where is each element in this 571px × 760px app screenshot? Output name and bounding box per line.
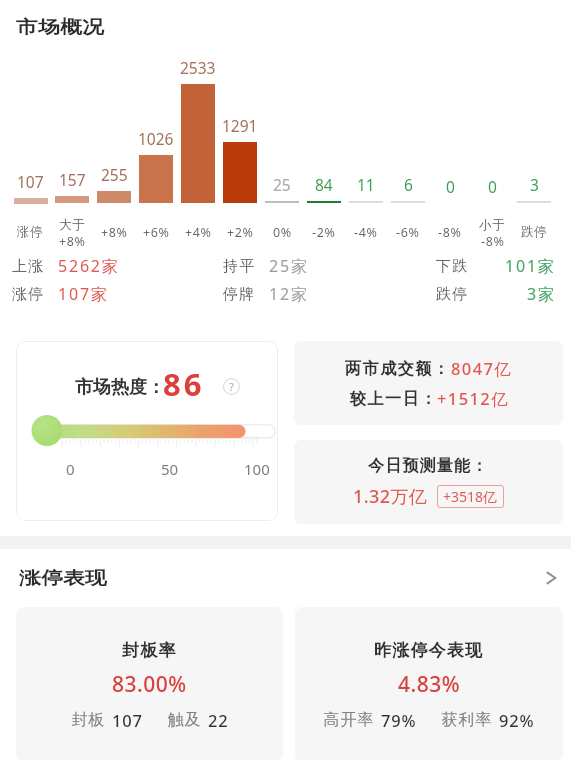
staticText: -8% <box>481 233 505 247</box>
staticText: 101家 <box>505 255 556 277</box>
staticText: 83.00% <box>112 670 187 699</box>
staticText: 25家 <box>269 255 309 277</box>
staticText: 0% <box>273 224 292 241</box>
staticText: 跌停 <box>521 224 548 240</box>
staticText: 107 <box>17 171 44 191</box>
staticText: 1.32万亿 <box>353 484 428 509</box>
staticText: 255 <box>101 164 128 184</box>
staticText: 跌停 <box>436 285 469 304</box>
staticText: 22 <box>208 709 229 731</box>
staticText: +1512亿 <box>437 387 510 410</box>
staticText: 持平 <box>223 257 256 276</box>
staticText: 封板 <box>71 710 105 730</box>
staticText: 封板率 <box>122 640 177 661</box>
staticText: 5262家 <box>58 255 120 277</box>
staticText: 涨停 <box>17 224 44 240</box>
staticText: +2% <box>227 224 254 241</box>
staticText: 157 <box>59 169 86 189</box>
button[interactable]: 封板率 <box>16 607 283 760</box>
staticText: 3 <box>530 174 539 194</box>
staticText: 92% <box>499 709 535 731</box>
staticText: 79% <box>381 709 417 731</box>
button[interactable]: 涨停表现 <box>0 561 571 597</box>
staticText: 涨停 <box>12 285 45 304</box>
staticText: +6% <box>143 224 170 241</box>
staticText: -2% <box>312 224 336 241</box>
staticText: +8% <box>101 224 128 241</box>
staticText: 86 <box>163 363 205 405</box>
staticText: 停牌 <box>223 285 256 304</box>
staticText: 0 <box>488 176 497 196</box>
staticText: 上涨 <box>12 257 45 276</box>
staticText: 0 <box>446 176 455 196</box>
staticText: -8% <box>438 224 462 241</box>
button[interactable]: 今日预测量能： <box>294 440 563 524</box>
staticText: 50 <box>161 459 179 479</box>
other: 查看更多 <box>543 568 563 588</box>
staticText: 12家 <box>269 283 309 305</box>
staticText: 市场热度： <box>75 376 165 399</box>
staticText: 高开率 <box>323 710 374 730</box>
staticText: 100 <box>244 459 270 479</box>
button[interactable]: 市场热度： <box>16 341 278 521</box>
staticText: -6% <box>396 224 420 241</box>
staticText: 1026 <box>138 128 174 148</box>
staticText: 2533 <box>180 57 216 77</box>
staticText: 下跌 <box>436 257 469 276</box>
staticText: +8% <box>59 233 86 247</box>
staticText: 市场概况 <box>16 16 104 38</box>
staticText: 小于 <box>479 217 506 233</box>
staticText: 两市成交额： <box>345 359 451 379</box>
staticText: 4.83% <box>398 670 461 699</box>
staticText: -4% <box>354 224 378 241</box>
staticText: 今日预测量能： <box>368 456 489 476</box>
staticText: +4% <box>185 224 212 241</box>
staticText: +3518亿 <box>443 487 498 506</box>
staticText: 107家 <box>58 283 109 305</box>
staticText: 6 <box>404 174 413 194</box>
staticText: 8047亿 <box>451 357 513 380</box>
staticText: 大于 <box>59 217 86 233</box>
button[interactable]: 两市成交额： <box>294 341 563 425</box>
staticText: 107 <box>112 709 143 731</box>
staticText: 涨停表现 <box>19 567 107 589</box>
staticText: 1291 <box>222 115 258 135</box>
staticText: 触及 <box>167 710 201 730</box>
staticText: 11 <box>357 174 375 194</box>
staticText: 获利率 <box>441 710 492 730</box>
staticText: ? <box>229 379 234 394</box>
staticText: 较上一日： <box>349 389 437 409</box>
staticText: 0 <box>66 459 75 479</box>
staticText: 3家 <box>527 283 556 305</box>
staticText: 昨涨停今表现 <box>374 640 484 661</box>
staticText: 84 <box>315 174 333 194</box>
staticText: 25 <box>273 174 291 194</box>
button[interactable]: 昨涨停今表现 <box>295 607 563 760</box>
